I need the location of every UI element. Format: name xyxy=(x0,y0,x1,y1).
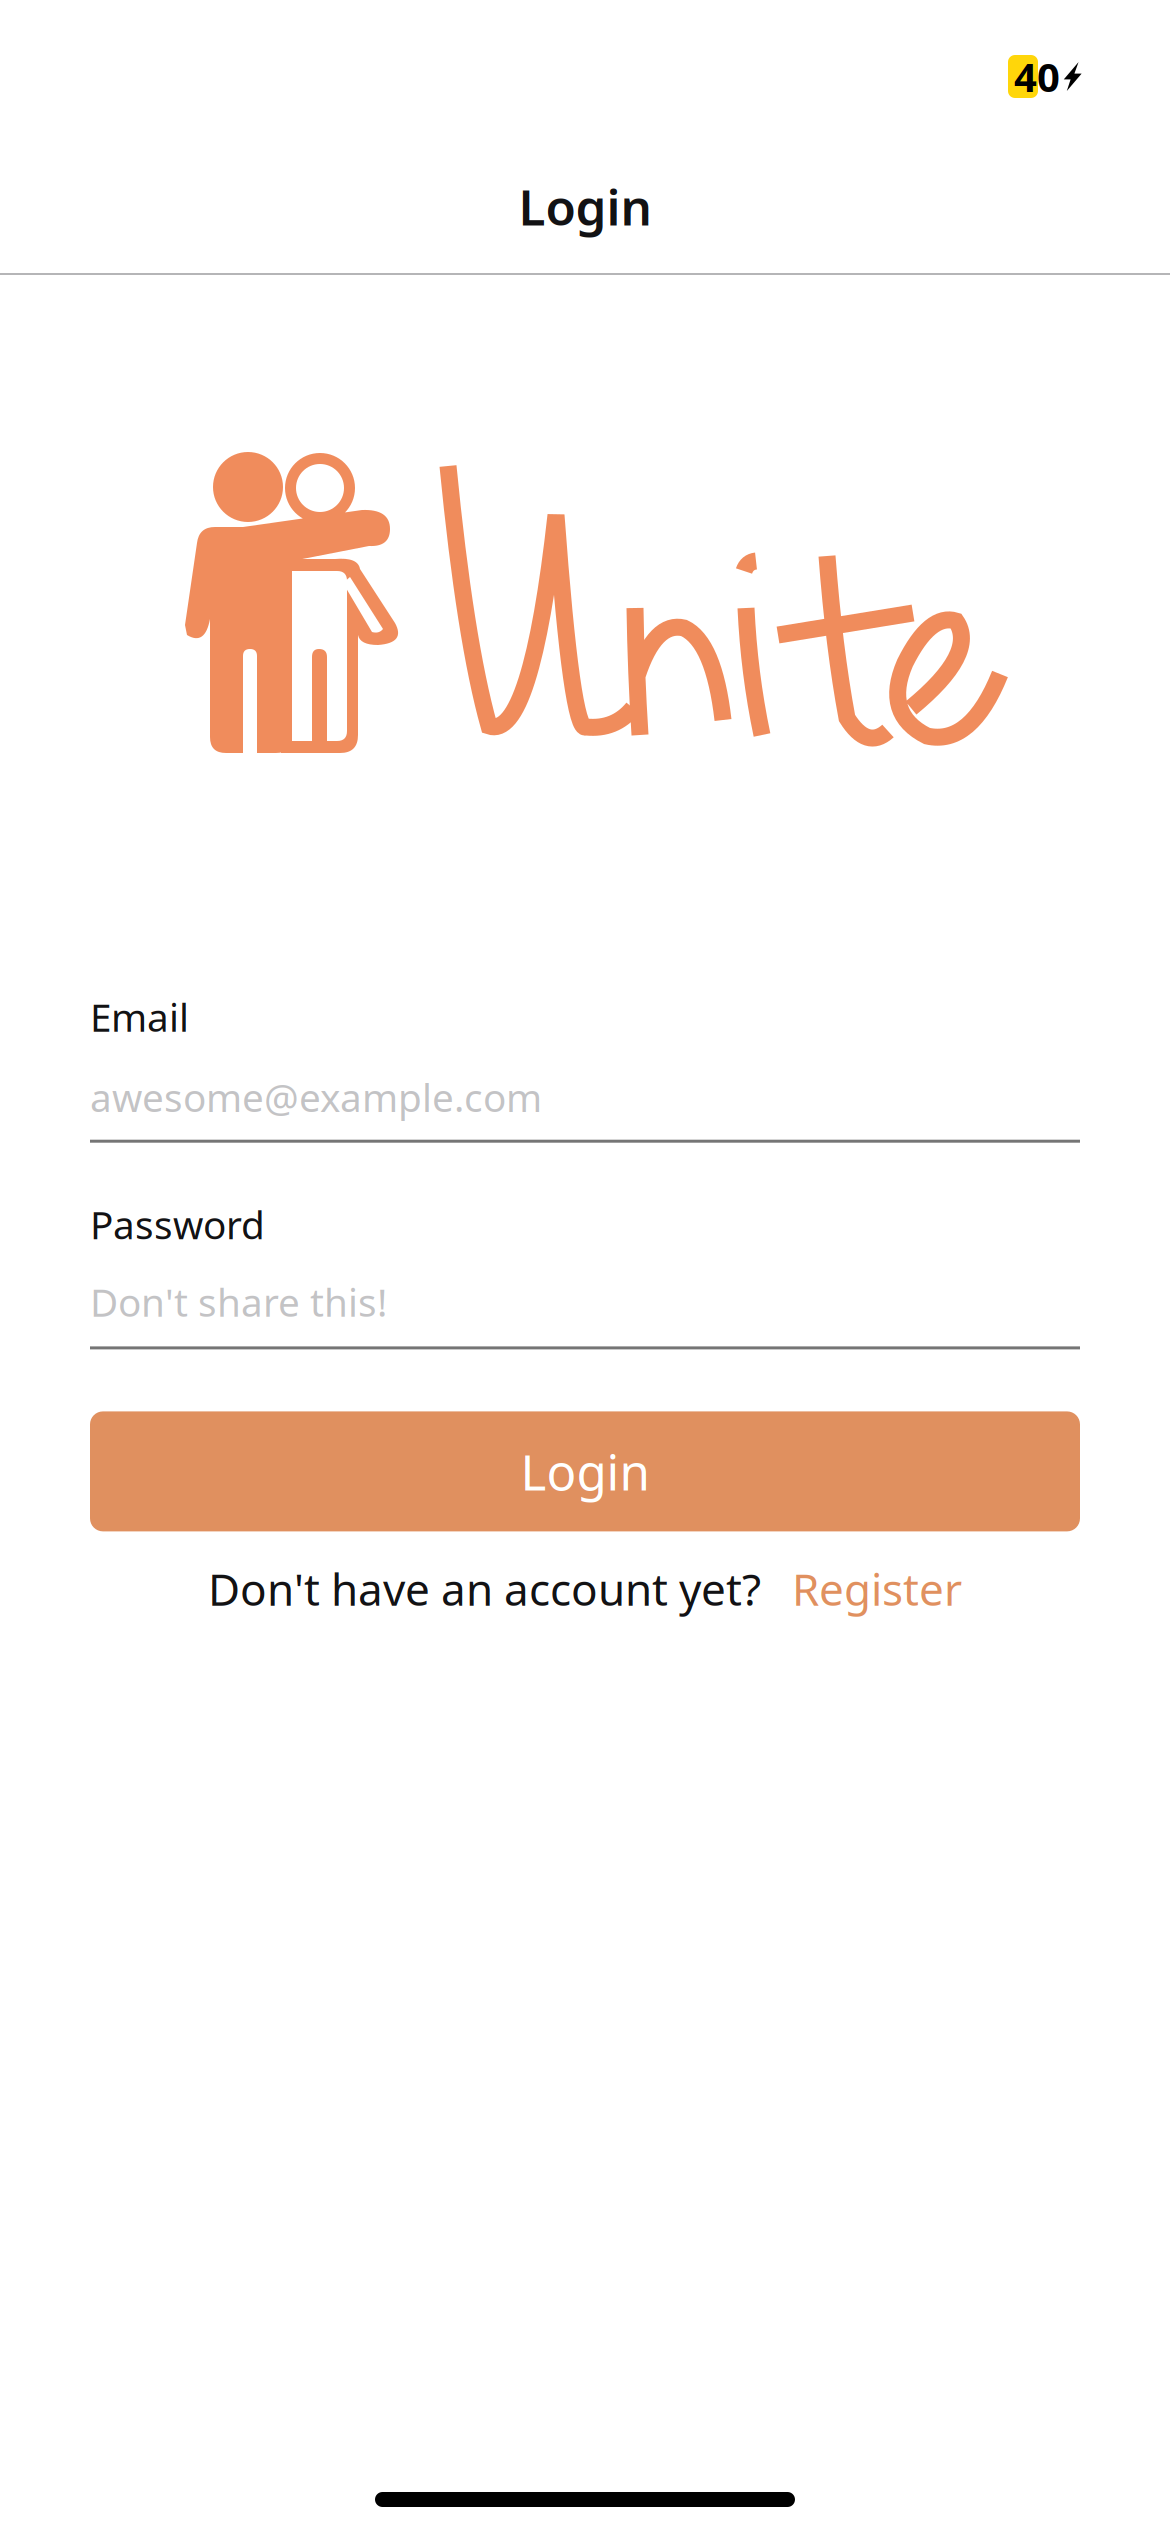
staticText: awesome@example.com xyxy=(90,1071,542,1123)
staticText: 40 xyxy=(1014,50,1060,103)
staticText: Email xyxy=(90,991,189,1042)
button[interactable]: Login xyxy=(90,1411,1080,1531)
button[interactable]: Register xyxy=(792,1559,962,1618)
staticText: Login xyxy=(520,1439,649,1504)
staticText: Register xyxy=(792,1559,962,1618)
staticText: Login xyxy=(518,173,651,239)
staticText: Don't have an account yet? xyxy=(208,1559,761,1618)
staticText: Don't share this! xyxy=(90,1276,387,1327)
staticText: Password xyxy=(90,1199,265,1250)
